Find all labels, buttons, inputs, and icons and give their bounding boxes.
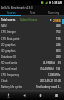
button[interactable]: Test xyxy=(22,10,43,15)
staticText: 2012-05-21 01:03 xyxy=(40,79,61,83)
button[interactable]: Recent apps xyxy=(48,90,64,100)
staticText: 752 xyxy=(56,30,61,34)
button[interactable]: Battery life cycles xyxy=(0,84,64,90)
staticText: 2988 xyxy=(53,18,61,22)
staticText: Scores xyxy=(7,11,16,15)
staticText: (14.4 MB/s) 134 xyxy=(40,67,61,71)
button[interactable]: Back xyxy=(16,90,32,100)
button[interactable]: SD card write xyxy=(0,60,64,66)
staticText: Total scores xyxy=(1,18,16,22)
button[interactable]: CPU frequency xyxy=(0,72,64,78)
button[interactable]: Running xyxy=(43,10,64,15)
staticText: Test battery need 3.. xyxy=(36,85,61,89)
staticText: AnTuTu Benchmark v2.9.3 xyxy=(1,6,33,10)
staticText: 603 xyxy=(56,49,61,53)
button[interactable]: 3D graphics xyxy=(0,48,64,54)
staticText: 246 xyxy=(56,43,61,47)
button[interactable]: Clock xyxy=(0,78,64,84)
button[interactable]: RAM xyxy=(0,23,64,29)
staticText: 1200 MHz xyxy=(48,73,61,77)
button[interactable]: CPU float-point xyxy=(0,35,64,42)
staticText: Clock xyxy=(1,79,8,83)
staticText: 1:38 AM xyxy=(52,1,63,5)
staticText: CPU float-point xyxy=(1,37,20,41)
staticText: 2D graphics xyxy=(1,43,16,47)
button[interactable]: Home xyxy=(32,90,48,100)
staticText: Battery life cycles xyxy=(1,85,23,89)
staticText: CPU Integer xyxy=(1,30,16,34)
staticText: Test xyxy=(30,11,36,15)
staticText: Database IO xyxy=(1,55,17,59)
staticText: 196 xyxy=(56,37,61,41)
button[interactable]: Total scores xyxy=(0,17,64,23)
staticText: RAM xyxy=(1,24,7,28)
staticText: 488 xyxy=(56,24,61,28)
staticText: Submit Scores xyxy=(20,18,38,22)
button[interactable]: Voice search xyxy=(0,90,16,100)
button[interactable]: SD card read xyxy=(0,66,64,72)
staticText: CPU frequency xyxy=(1,73,19,77)
button[interactable]: Scores xyxy=(0,10,22,15)
button[interactable]: Database IO xyxy=(0,54,64,60)
staticText: 3D graphics xyxy=(1,49,16,53)
staticText: (4.9 MB/s) 59 xyxy=(43,61,61,65)
button[interactable]: CPU Integer xyxy=(0,29,64,35)
staticText: SD card write xyxy=(1,61,18,65)
staticText: SD card read xyxy=(1,67,17,71)
staticText: Running xyxy=(48,11,60,15)
button[interactable]: 2D graphics xyxy=(0,42,64,48)
staticText: 280 xyxy=(56,55,61,59)
